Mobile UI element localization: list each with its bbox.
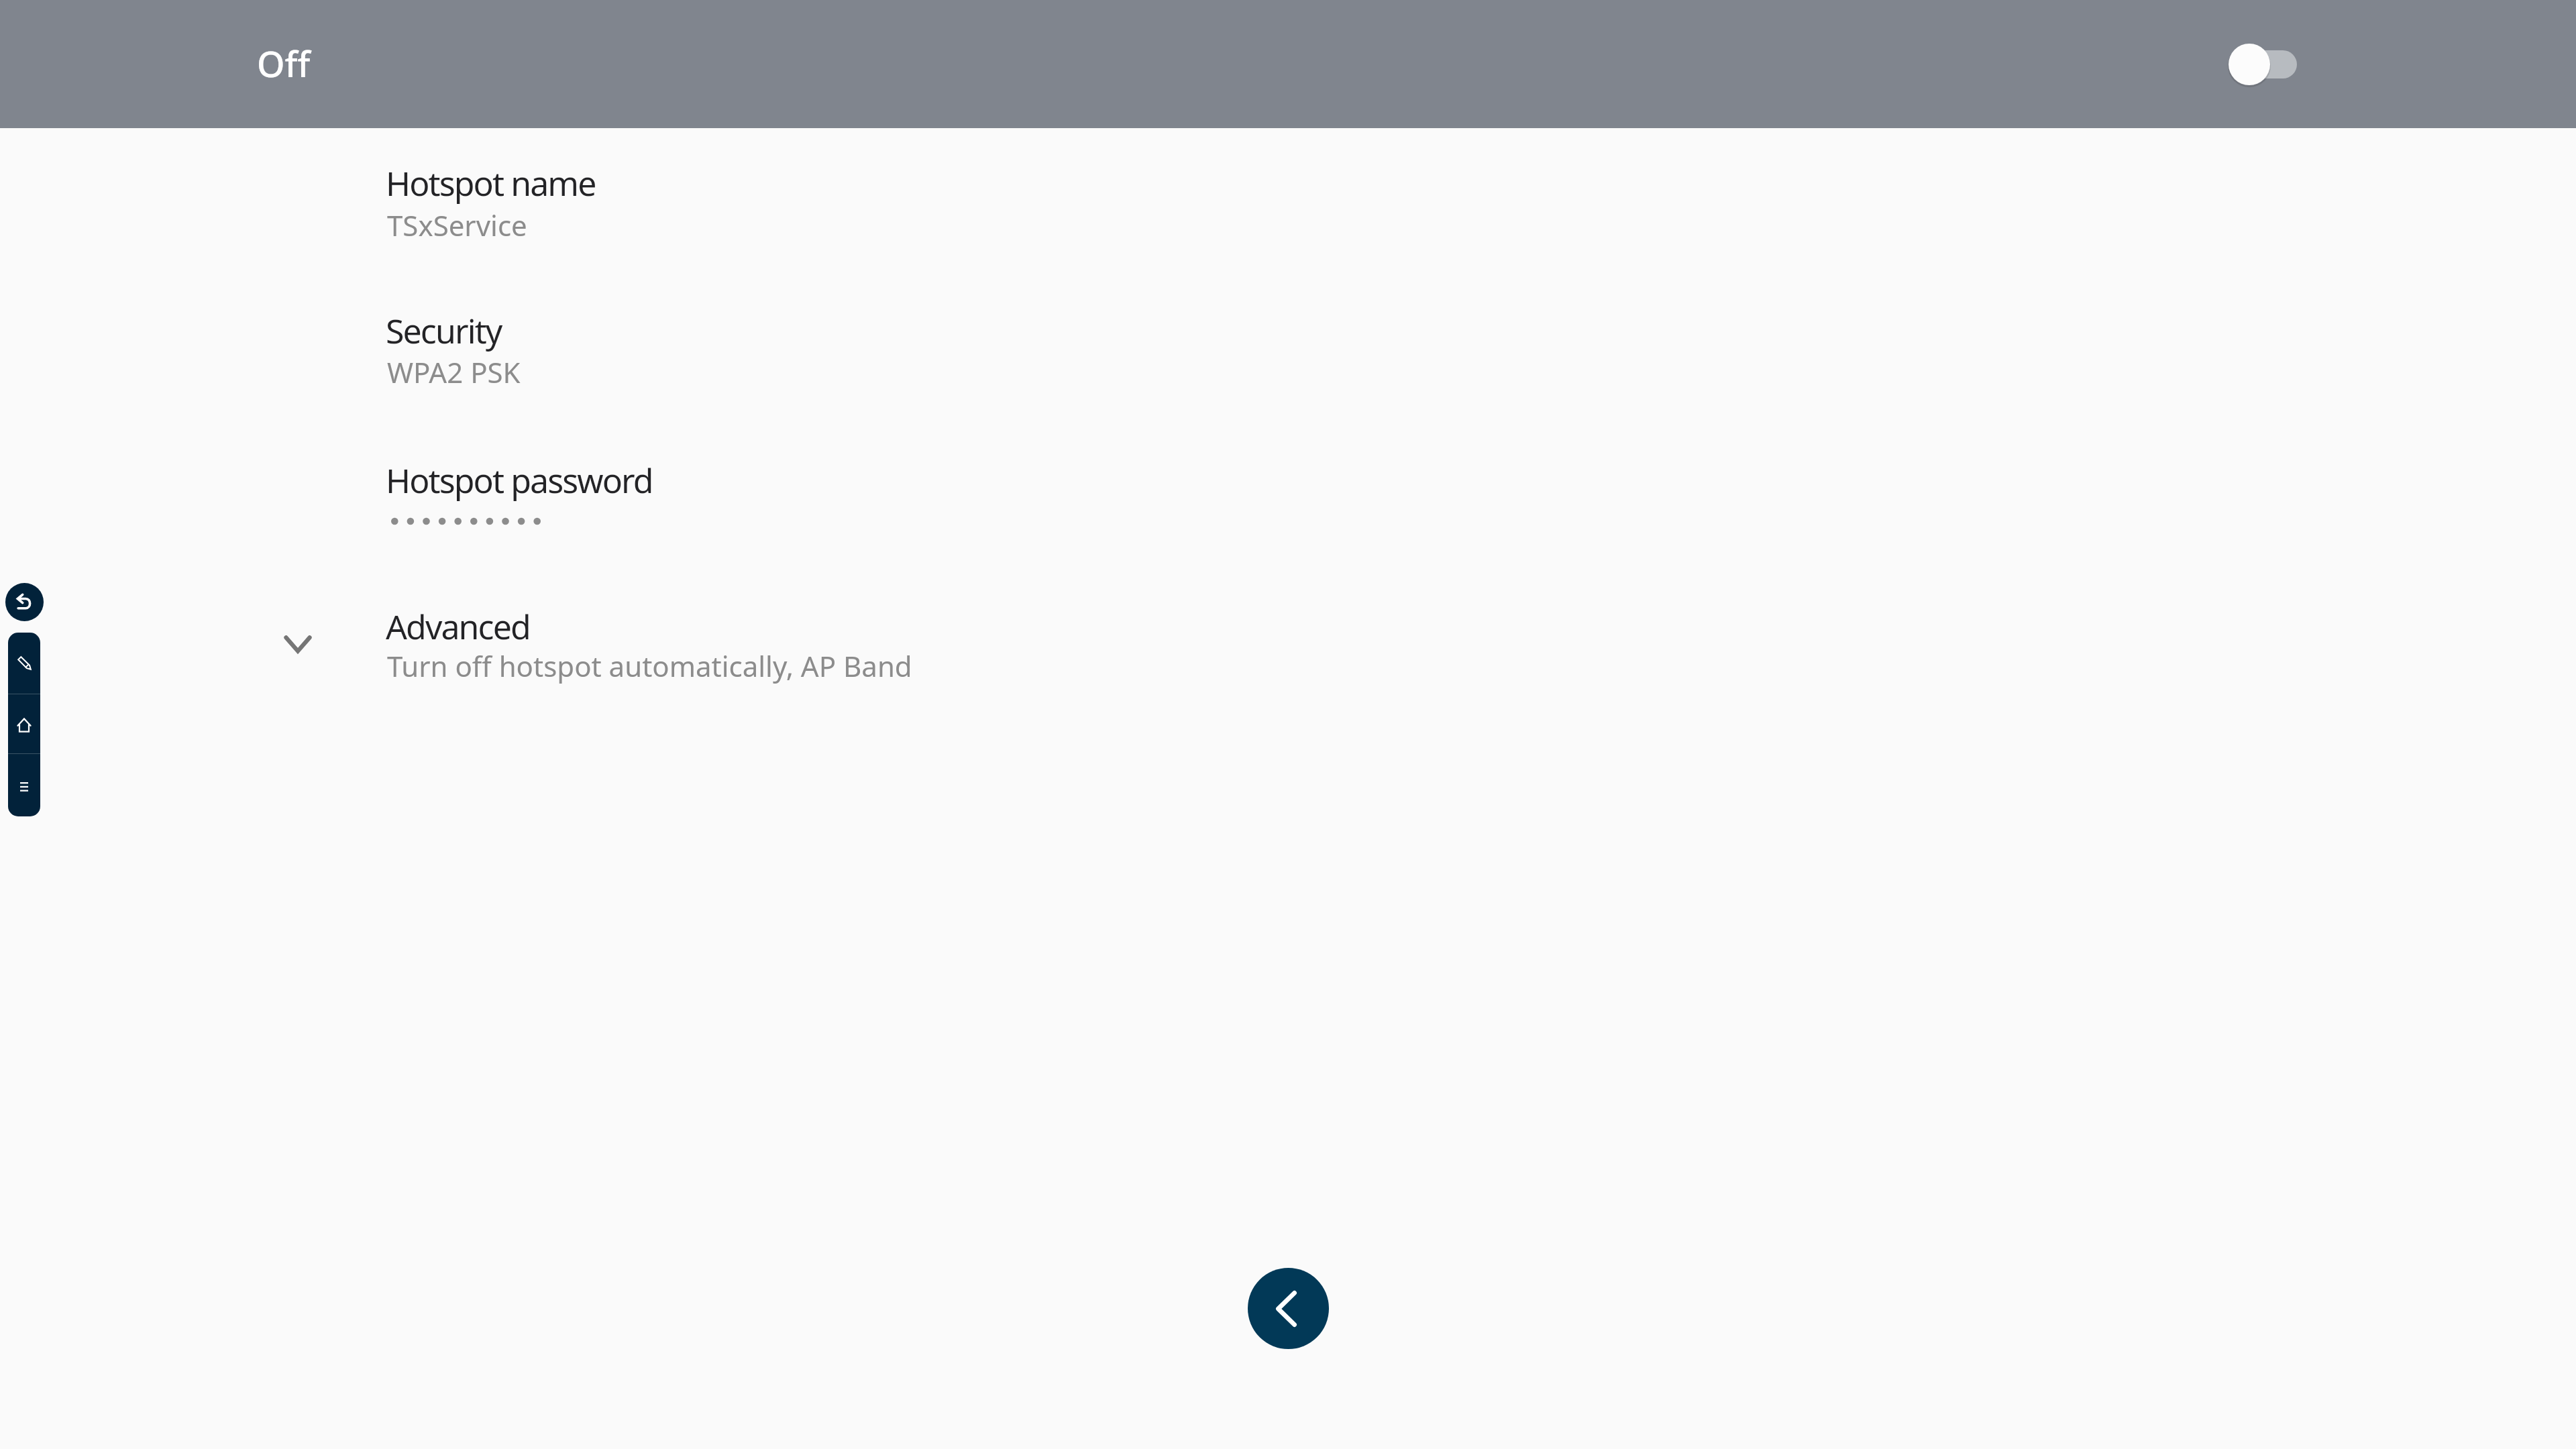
button[interactable]: Back xyxy=(5,583,44,621)
staticText: WPA2 PSK xyxy=(387,353,521,391)
staticText: TSxService xyxy=(387,206,527,244)
staticText: Security xyxy=(386,308,502,354)
button[interactable]: Hotspot password xyxy=(143,432,2437,559)
staticText: Off xyxy=(257,39,311,87)
button[interactable]: Edit xyxy=(8,633,40,694)
button[interactable]: Back xyxy=(1248,1268,1329,1349)
button[interactable]: Hotspot name xyxy=(143,135,2437,262)
staticText: Hotspot password xyxy=(386,458,653,503)
staticText: Hotspot name xyxy=(386,160,596,206)
button[interactable]: Menu xyxy=(8,754,40,816)
staticText: Turn off hotspot automatically, AP Band xyxy=(387,647,912,685)
button[interactable]: Hotspot on off toggle xyxy=(2211,17,2339,111)
staticText: Advanced xyxy=(386,604,530,649)
button[interactable]: Security xyxy=(143,282,2437,410)
button[interactable]: Advanced xyxy=(143,578,2437,706)
button[interactable]: Home xyxy=(8,694,40,753)
